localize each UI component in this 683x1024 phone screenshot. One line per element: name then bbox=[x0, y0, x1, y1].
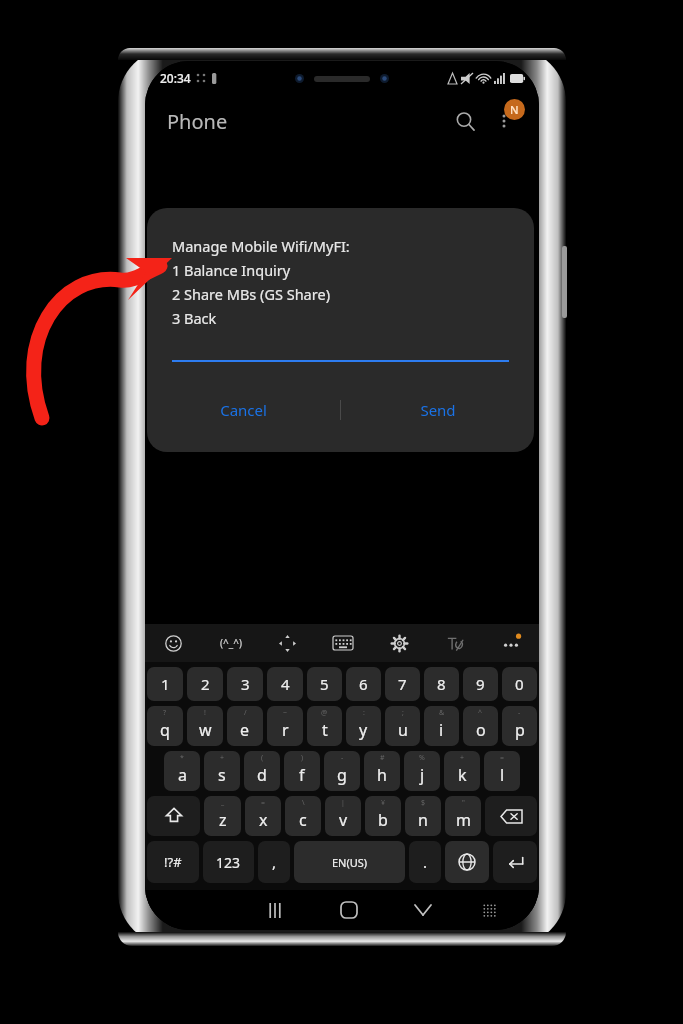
staticText: Manage Mobile Wifi/MyFI: bbox=[172, 236, 350, 256]
button[interactable]: Change language bbox=[445, 841, 489, 883]
staticText: g bbox=[337, 764, 347, 786]
staticText: y bbox=[359, 719, 368, 741]
staticText: ^ bbox=[478, 708, 483, 718]
button[interactable]: EN(US) bbox=[294, 841, 405, 883]
button[interactable]: Keyboard layout bbox=[460, 890, 519, 930]
button[interactable]: 2 bbox=[187, 667, 223, 701]
staticText: \ bbox=[302, 798, 305, 808]
button[interactable]: ! bbox=[187, 706, 223, 746]
staticText: c bbox=[299, 809, 307, 831]
staticText: !?# bbox=[164, 853, 182, 871]
button[interactable]: More bbox=[483, 624, 539, 662]
button[interactable]: Search bbox=[445, 101, 485, 141]
button[interactable]: & bbox=[424, 706, 459, 746]
button[interactable]: Cancel bbox=[147, 388, 340, 432]
button[interactable]: 8 bbox=[424, 667, 459, 701]
button[interactable]: Home bbox=[312, 890, 386, 930]
button[interactable]: ~ bbox=[267, 706, 303, 746]
staticText: = bbox=[261, 798, 266, 808]
button[interactable]: Settings bbox=[371, 624, 427, 662]
button[interactable]: 9 bbox=[463, 667, 498, 701]
staticText: 3 bbox=[241, 674, 250, 694]
button[interactable]: = bbox=[484, 751, 520, 791]
button[interactable]: ? bbox=[147, 706, 183, 746]
staticText: N bbox=[510, 102, 519, 117]
button[interactable]: ; bbox=[385, 706, 420, 746]
button[interactable]: % bbox=[404, 751, 440, 791]
button[interactable]: Hide keyboard bbox=[386, 890, 460, 930]
staticText: o bbox=[476, 719, 486, 741]
button[interactable]: . bbox=[409, 841, 441, 883]
button[interactable]: Keyboard modes bbox=[315, 624, 371, 662]
button[interactable]: Handwriting bbox=[427, 624, 483, 662]
button[interactable]: * bbox=[164, 751, 200, 791]
staticText: 8 bbox=[437, 674, 446, 694]
button[interactable]: @ bbox=[307, 706, 342, 746]
button[interactable]: More options bbox=[485, 102, 523, 140]
button[interactable]: - bbox=[324, 751, 360, 791]
button[interactable]: \ bbox=[285, 796, 321, 836]
button[interactable]: # bbox=[364, 751, 400, 791]
button[interactable]: / bbox=[227, 706, 263, 746]
button[interactable]: 0 bbox=[502, 667, 537, 701]
staticText: a bbox=[178, 764, 187, 786]
staticText: 9 bbox=[476, 674, 485, 694]
button[interactable]: Backspace bbox=[485, 796, 537, 836]
button[interactable]: 5 bbox=[307, 667, 342, 701]
button[interactable]: 3 bbox=[227, 667, 263, 701]
button[interactable]: Emoji bbox=[145, 624, 202, 662]
button[interactable]: Enter bbox=[493, 841, 537, 883]
button[interactable]: 5 bbox=[277, 273, 408, 347]
button[interactable]: 123 bbox=[203, 841, 254, 883]
staticText: p bbox=[515, 719, 525, 741]
button[interactable]: 4 bbox=[145, 273, 277, 347]
staticText: n bbox=[418, 809, 428, 831]
staticText: ? bbox=[163, 708, 167, 718]
staticText: " bbox=[462, 798, 465, 808]
button[interactable]: 7 bbox=[385, 667, 420, 701]
button[interactable]: = bbox=[245, 796, 281, 836]
staticText: & bbox=[439, 708, 445, 718]
button[interactable]: : bbox=[346, 706, 381, 746]
button[interactable]: ) bbox=[284, 751, 320, 791]
button[interactable]: ¥ bbox=[365, 796, 401, 836]
button[interactable]: ^ bbox=[463, 706, 498, 746]
staticText: : bbox=[363, 708, 365, 718]
staticText: Send bbox=[420, 400, 456, 420]
button[interactable]: Account bbox=[504, 99, 525, 120]
button[interactable]: 2 bbox=[277, 199, 408, 273]
button[interactable]: _ bbox=[204, 796, 241, 836]
button[interactable]: + bbox=[204, 751, 240, 791]
button[interactable]: | bbox=[325, 796, 361, 836]
button[interactable]: 1 bbox=[147, 667, 183, 701]
staticText: h bbox=[377, 764, 387, 786]
button[interactable]: Recents bbox=[238, 890, 312, 930]
button[interactable]: ( bbox=[244, 751, 280, 791]
button[interactable]: $ bbox=[405, 796, 441, 836]
staticText: z bbox=[219, 809, 227, 831]
button[interactable]: 6 bbox=[346, 667, 381, 701]
staticText: ) bbox=[301, 753, 304, 763]
button[interactable]: !?# bbox=[147, 841, 199, 883]
button[interactable]: 3 bbox=[408, 199, 539, 273]
button[interactable]: " bbox=[445, 796, 481, 836]
staticText: u bbox=[398, 719, 408, 741]
staticText: q bbox=[160, 719, 170, 741]
staticText: EN(US) bbox=[332, 855, 368, 870]
button[interactable]: 4 bbox=[267, 667, 303, 701]
staticText: 1 Balance Inquiry bbox=[172, 260, 291, 280]
button[interactable]: - bbox=[502, 706, 537, 746]
button[interactable]: Emoticons bbox=[202, 624, 259, 662]
button[interactable]: 6 bbox=[408, 273, 539, 347]
button[interactable]: 1 bbox=[145, 199, 277, 273]
button[interactable]: Shift bbox=[147, 796, 200, 836]
button[interactable]: + bbox=[444, 751, 480, 791]
button[interactable]: , bbox=[258, 841, 290, 883]
staticText: | bbox=[341, 798, 345, 808]
staticText: = bbox=[500, 753, 505, 763]
button[interactable]: Move cursor bbox=[259, 624, 315, 662]
staticText: ¥ bbox=[381, 798, 386, 808]
button[interactable]: Send bbox=[341, 388, 534, 432]
